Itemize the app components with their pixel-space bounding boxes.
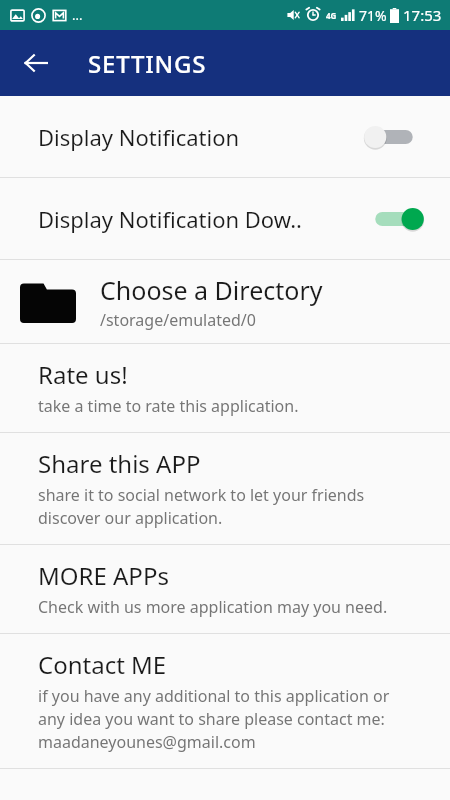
- button[interactable]: Choose a Directory: [0, 260, 450, 343]
- button[interactable]: Rate us!: [0, 344, 450, 432]
- staticText: 17:53: [403, 5, 442, 25]
- button[interactable]: Share this APP: [0, 433, 450, 544]
- staticText: 4G: [326, 10, 337, 21]
- staticText: Check with us more application may you n…: [38, 596, 388, 618]
- staticText: SETTINGS: [88, 47, 207, 80]
- button[interactable]: MORE APPs: [0, 545, 450, 633]
- staticText: share it to social network to let your f…: [38, 484, 365, 506]
- button[interactable]: Back: [8, 35, 64, 91]
- staticText: Choose a Directory: [100, 273, 323, 307]
- staticText: discover our application.: [38, 507, 223, 529]
- staticText: MORE APPs: [38, 559, 169, 592]
- staticText: maadaneyounes@gmail.com: [38, 731, 256, 753]
- button[interactable]: Contact ME: [0, 634, 450, 768]
- staticText: ...: [72, 6, 83, 24]
- button[interactable]: Display Notification: [0, 96, 450, 177]
- staticText: Display Notification: [38, 122, 240, 152]
- staticText: if you have any additional to this appli…: [38, 685, 390, 707]
- staticText: Contact ME: [38, 648, 167, 681]
- button[interactable]: Display Notification Dow..: [0, 178, 450, 259]
- staticText: Rate us!: [38, 358, 128, 391]
- staticText: Display Notification Dow..: [38, 204, 302, 234]
- staticText: any idea you want to share please contac…: [38, 708, 385, 730]
- staticText: /storage/emulated/0: [100, 309, 256, 331]
- staticText: Share this APP: [38, 447, 201, 480]
- staticText: 71%: [359, 6, 387, 25]
- staticText: take a time to rate this application.: [38, 395, 299, 417]
